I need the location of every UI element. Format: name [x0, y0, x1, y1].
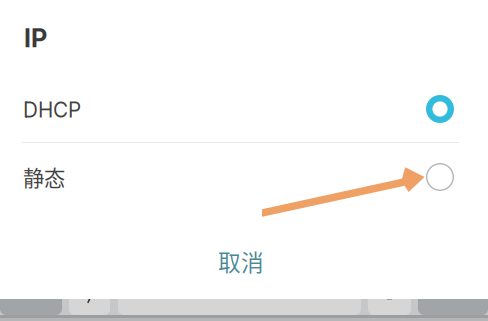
button[interactable]: 取消 [0, 243, 482, 279]
staticText: 取消 [218, 245, 264, 277]
staticText: DHCP [23, 97, 81, 122]
staticText: 静态 [23, 162, 65, 192]
button[interactable]: DHCP [0, 80, 488, 136]
button[interactable]: 静态 [0, 148, 488, 204]
staticText: IP [24, 23, 47, 53]
